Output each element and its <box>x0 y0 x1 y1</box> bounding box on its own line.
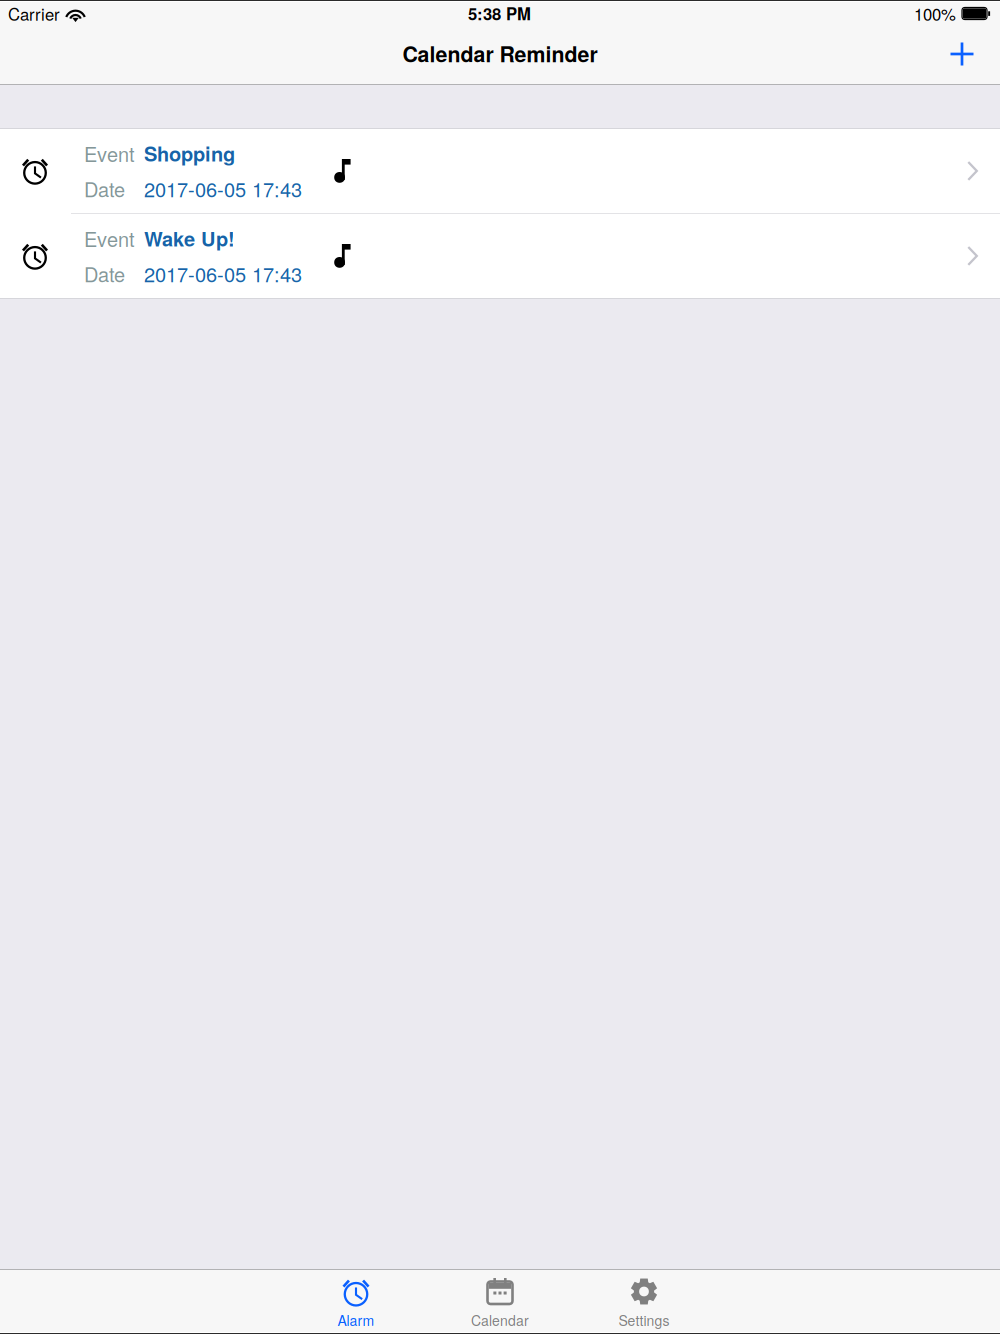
staticText: 5:38 PM <box>468 2 531 25</box>
staticText: 2017-06-05 17:43 <box>144 259 302 288</box>
staticText: Shopping <box>144 139 235 168</box>
button[interactable]: Event <box>0 129 1000 213</box>
button[interactable]: Add reminder <box>940 32 984 81</box>
staticText: Event <box>84 224 135 253</box>
staticText: 2017-06-05 17:43 <box>144 174 302 203</box>
staticText: Calendar <box>471 1310 529 1330</box>
staticText: Date <box>84 174 125 203</box>
button[interactable]: Alarm <box>284 1270 428 1332</box>
staticText: Settings <box>618 1310 669 1330</box>
button[interactable]: Calendar <box>428 1270 572 1332</box>
staticText: Wake Up! <box>144 224 235 253</box>
staticText: Date <box>84 259 125 288</box>
button[interactable]: Event <box>0 214 1000 298</box>
staticText: Alarm <box>337 1310 374 1330</box>
staticText: 100% <box>914 2 956 25</box>
staticText: Carrier <box>8 2 60 25</box>
staticText: Calendar Reminder <box>402 38 597 69</box>
button[interactable]: Settings <box>572 1270 716 1332</box>
staticText: Event <box>84 139 135 168</box>
